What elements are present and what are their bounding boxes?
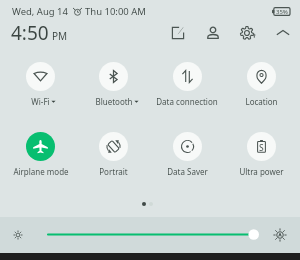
button[interactable]: Brightness <box>48 228 259 242</box>
staticText: Portrait <box>99 166 128 177</box>
staticText: Data Saver <box>167 166 208 177</box>
button[interactable]: Airplane mode <box>4 132 77 177</box>
staticText: Wed, Aug 14 <box>12 5 68 18</box>
staticText: PM <box>52 29 68 43</box>
staticText: Thu 10:00 AM <box>85 5 146 18</box>
staticText: Data connection <box>156 96 218 107</box>
button[interactable]: Edit quick settings <box>168 23 188 43</box>
button[interactable]: Portrait <box>77 132 150 177</box>
staticText: S <box>259 142 264 154</box>
staticText: Airplane mode <box>13 166 69 177</box>
button[interactable]: Location <box>224 62 298 107</box>
button[interactable]: Collapse panel <box>273 23 293 43</box>
staticText: Ultra power <box>239 166 284 177</box>
button[interactable]: User profile <box>203 23 223 43</box>
button[interactable]: Data Saver <box>150 132 224 177</box>
staticText: 35% <box>276 8 288 16</box>
staticText: Location <box>245 96 278 107</box>
button[interactable]: S <box>224 132 298 177</box>
button[interactable]: Data connection <box>150 62 224 107</box>
staticText: Wi-Fi <box>31 96 50 107</box>
button[interactable]: Wi-Fi <box>4 62 77 107</box>
staticText: 4:50 <box>11 20 49 46</box>
button[interactable]: Settings <box>238 23 258 43</box>
button[interactable]: Bluetooth <box>77 62 150 107</box>
staticText: Bluetooth <box>95 96 133 107</box>
